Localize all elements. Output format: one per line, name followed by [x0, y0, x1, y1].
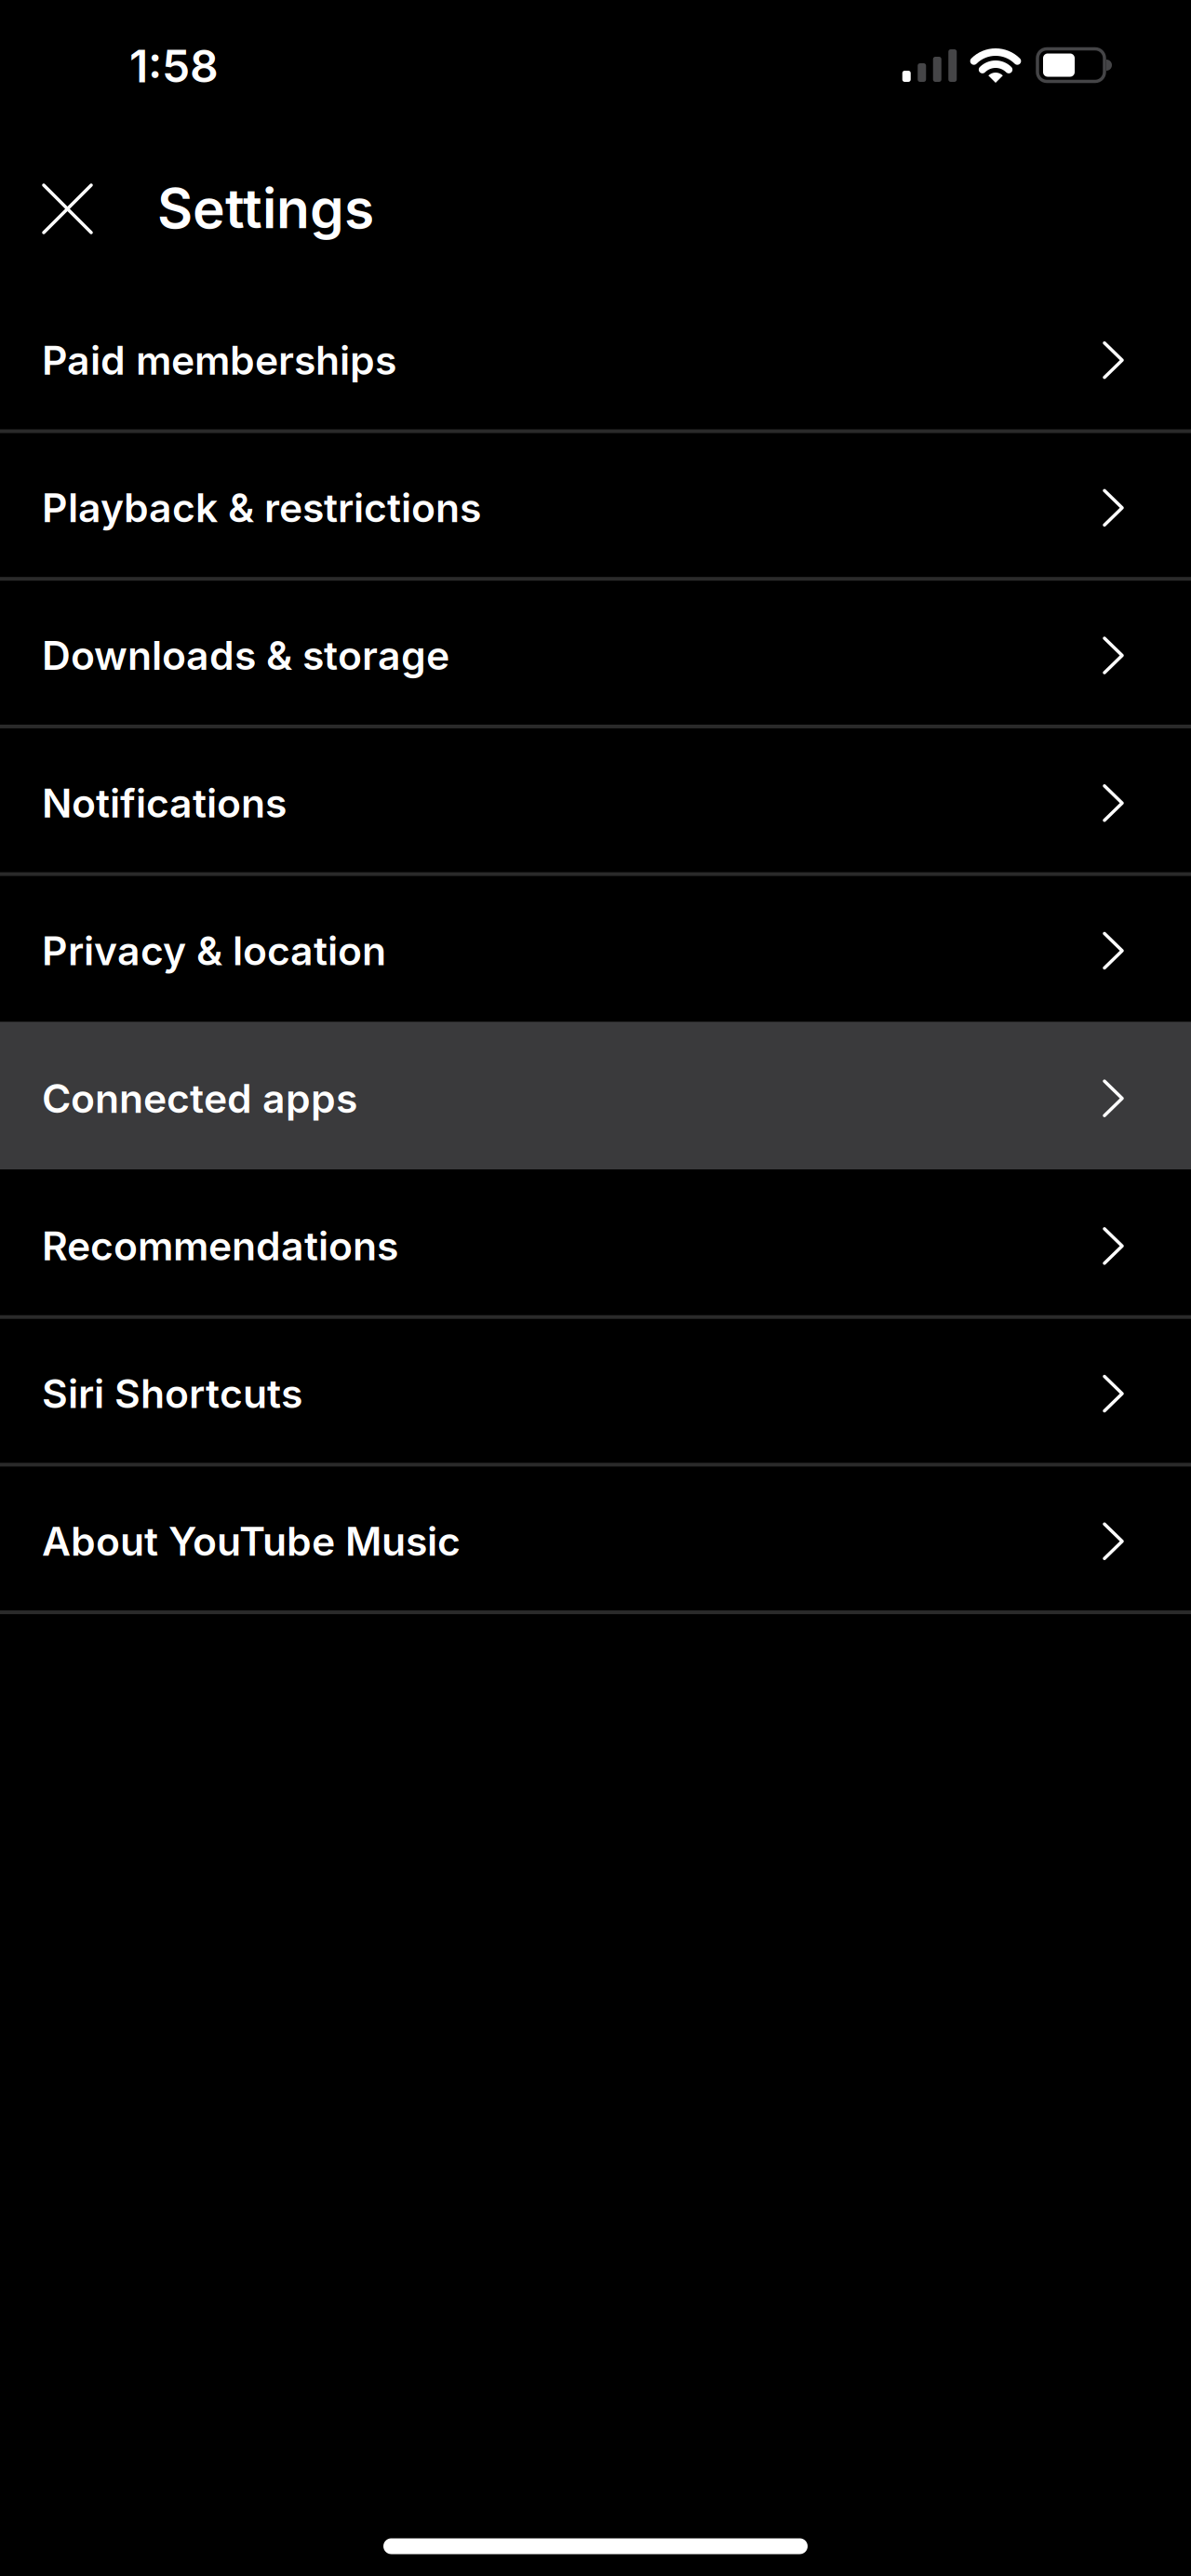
staticText: Playback & restrictions — [42, 484, 481, 531]
button[interactable]: Notifications — [0, 726, 1191, 874]
staticText: Paid memberships — [42, 337, 396, 384]
staticText: Settings — [157, 176, 374, 241]
button[interactable]: Privacy & location — [0, 874, 1191, 1022]
button[interactable]: Connected apps — [0, 1022, 1191, 1169]
staticText: 1:58 — [129, 40, 219, 92]
button[interactable]: About YouTube Music — [0, 1465, 1191, 1612]
button[interactable]: Playback & restrictions — [0, 431, 1191, 579]
staticText: About YouTube Music — [42, 1518, 461, 1565]
button[interactable]: Downloads & storage — [0, 579, 1191, 726]
staticText: Siri Shortcuts — [42, 1370, 302, 1417]
button[interactable]: Recommendations — [0, 1169, 1191, 1317]
staticText: Privacy & location — [42, 927, 386, 974]
staticText: Downloads & storage — [42, 632, 449, 679]
staticText: Notifications — [42, 780, 287, 826]
button[interactable]: Paid memberships — [0, 284, 1191, 431]
button[interactable]: Siri Shortcuts — [0, 1317, 1191, 1465]
staticText: Recommendations — [42, 1223, 398, 1269]
button[interactable]: Close — [20, 162, 114, 255]
staticText: Connected apps — [42, 1075, 357, 1122]
